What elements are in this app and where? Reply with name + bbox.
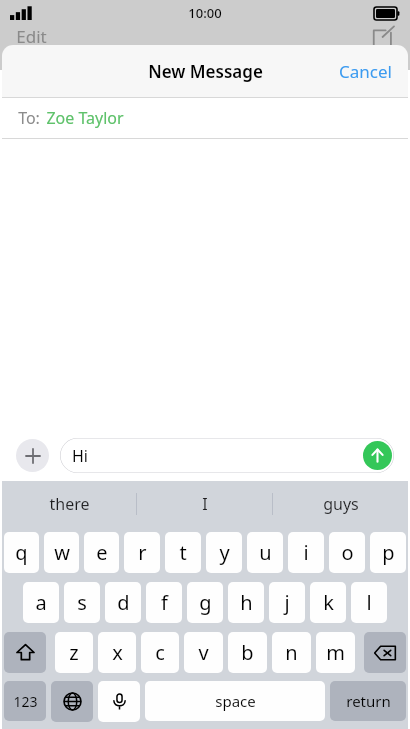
staticText: guys: [323, 493, 359, 515]
button[interactable]: i: [288, 532, 324, 573]
staticText: I: [202, 493, 208, 515]
button[interactable]: I: [137, 481, 272, 527]
button[interactable]: k: [310, 582, 346, 623]
button[interactable]: w: [44, 532, 79, 573]
staticText: i: [303, 539, 309, 566]
button[interactable]: n: [272, 632, 311, 673]
button[interactable]: z: [55, 632, 93, 673]
staticText: o: [341, 539, 354, 566]
button[interactable]: o: [329, 532, 365, 573]
button[interactable]: Cancel: [323, 50, 408, 93]
button[interactable]: Switch keyboard: [51, 681, 93, 722]
button[interactable]: Dictate: [98, 681, 140, 722]
button[interactable]: a: [23, 582, 59, 623]
button[interactable]: Send: [363, 441, 392, 470]
button[interactable]: Backspace: [364, 632, 406, 673]
button[interactable]: space: [145, 681, 325, 721]
button[interactable]: u: [247, 532, 283, 573]
button[interactable]: t: [165, 532, 201, 573]
button[interactable]: r: [124, 532, 160, 573]
staticText: z: [69, 639, 79, 666]
staticText: h: [240, 589, 253, 616]
button[interactable]: To:: [2, 98, 408, 138]
staticText: f: [161, 589, 168, 616]
staticText: 123: [13, 692, 38, 711]
staticText: y: [219, 539, 230, 566]
button[interactable]: v: [184, 632, 223, 673]
staticText: a: [35, 589, 47, 616]
staticText: w: [54, 539, 70, 566]
button[interactable]: y: [206, 532, 242, 573]
staticText: Zoe Taylor: [46, 107, 124, 129]
staticText: p: [382, 539, 395, 566]
staticText: b: [241, 639, 254, 666]
button[interactable]: g: [187, 582, 223, 623]
staticText: return: [346, 691, 391, 711]
staticText: u: [259, 539, 272, 566]
button[interactable]: Add attachment: [16, 439, 49, 472]
staticText: d: [117, 589, 130, 616]
staticText: Cancel: [339, 60, 392, 83]
staticText: Hi: [72, 445, 88, 467]
button[interactable]: Hi: [60, 438, 394, 473]
button[interactable]: return: [330, 681, 406, 721]
button[interactable]: c: [141, 632, 179, 673]
button[interactable]: h: [228, 582, 264, 623]
button[interactable]: 123: [4, 681, 46, 721]
button[interactable]: s: [64, 582, 100, 623]
button[interactable]: Shift: [4, 632, 46, 673]
button[interactable]: q: [4, 532, 39, 573]
staticText: 10:00: [188, 4, 222, 22]
button[interactable]: l: [351, 582, 387, 623]
staticText: g: [199, 589, 212, 616]
button[interactable]: m: [316, 632, 355, 673]
staticText: m: [326, 639, 345, 666]
button[interactable]: b: [228, 632, 267, 673]
button[interactable]: e: [84, 532, 119, 573]
button[interactable]: j: [269, 582, 305, 623]
staticText: space: [215, 691, 256, 711]
staticText: l: [366, 589, 372, 616]
button[interactable]: guys: [273, 481, 408, 527]
staticText: k: [323, 589, 334, 616]
staticText: n: [285, 639, 298, 666]
button[interactable]: x: [98, 632, 136, 673]
staticText: New Message: [148, 60, 263, 83]
button[interactable]: there: [2, 481, 136, 527]
staticText: there: [49, 493, 90, 515]
staticText: t: [179, 539, 187, 566]
staticText: e: [96, 539, 108, 566]
staticText: c: [155, 639, 165, 666]
button[interactable]: d: [105, 582, 141, 623]
staticText: To:: [18, 107, 40, 129]
staticText: s: [77, 589, 87, 616]
staticText: Edit: [16, 25, 47, 48]
button[interactable]: p: [370, 532, 406, 573]
staticText: j: [284, 589, 290, 616]
staticText: x: [112, 639, 123, 666]
staticText: r: [138, 539, 147, 566]
staticText: q: [15, 539, 28, 566]
button[interactable]: f: [146, 582, 182, 623]
staticText: v: [198, 639, 209, 666]
